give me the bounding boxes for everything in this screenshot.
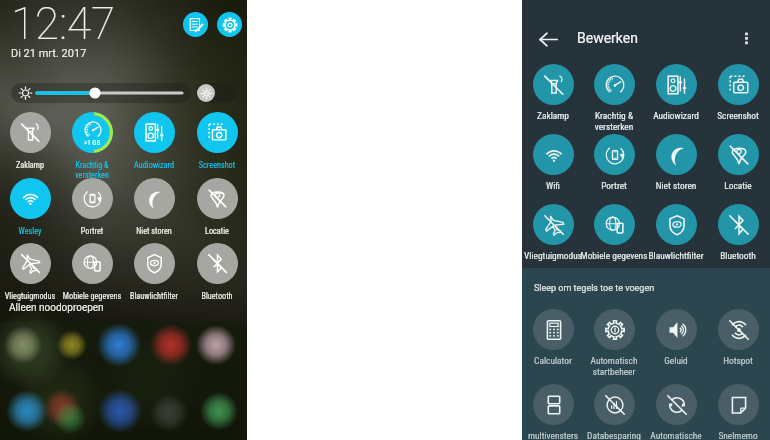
staticText: Bluetooth xyxy=(693,250,770,261)
staticText: Vliegtuigmodus xyxy=(0,291,75,301)
button[interactable]: Calculator xyxy=(508,309,598,366)
button[interactable]: Audiowizard xyxy=(109,112,199,170)
button[interactable]: Notities xyxy=(183,12,208,37)
button[interactable]: Krachtig & versterken xyxy=(569,64,659,132)
button[interactable]: Geluid xyxy=(631,309,721,366)
staticText: Mobiele gegevens xyxy=(569,250,659,261)
button[interactable]: multivensters xyxy=(508,384,598,440)
button[interactable]: Audiowizard xyxy=(631,64,721,121)
staticText: Geluid xyxy=(631,355,721,366)
staticText: Calculator xyxy=(508,355,598,366)
button[interactable]: Niet storen xyxy=(109,178,199,236)
staticText: Locatie xyxy=(172,226,262,236)
staticText: Krachtig & versterken xyxy=(569,110,659,132)
button[interactable]: Locatie xyxy=(172,178,262,236)
staticText: 12:47 xyxy=(11,0,116,50)
button[interactable]: Automatische synchronisatie xyxy=(631,384,721,440)
button[interactable]: Zaklamp xyxy=(508,64,598,121)
button[interactable]: Niet storen xyxy=(631,134,721,191)
staticText: Niet storen xyxy=(109,226,199,236)
button[interactable]: Bluetooth xyxy=(693,204,770,261)
staticText: Wifi xyxy=(508,180,598,191)
button[interactable]: Hotspot xyxy=(693,309,770,366)
button[interactable]: Screenshot xyxy=(172,112,262,170)
staticText: Hotspot xyxy=(693,355,770,366)
button[interactable]: Automatische helderheid xyxy=(196,83,236,103)
staticText: multivensters xyxy=(508,430,598,440)
button[interactable]: Mobiele gegevens xyxy=(569,204,659,261)
button[interactable]: Portret xyxy=(47,178,137,236)
staticText: Portret xyxy=(47,226,137,236)
staticText: Databesparing xyxy=(569,430,659,440)
staticText: Blauwlichtfilter xyxy=(631,250,721,261)
staticText: Zaklamp xyxy=(0,160,75,170)
staticText: Niet storen xyxy=(631,180,721,191)
staticText: Alleen noodoproepen xyxy=(9,302,104,314)
button[interactable]: >1 GB xyxy=(47,112,137,180)
staticText: Screenshot xyxy=(693,110,770,121)
staticText: Vliegtuigmodus xyxy=(508,250,598,261)
staticText: Mobiele gegevens xyxy=(47,291,137,301)
staticText: Sleep om tegels toe te voegen xyxy=(534,283,655,294)
staticText: Zaklamp xyxy=(508,110,598,121)
staticText: >1 GB xyxy=(84,139,101,147)
staticText: Automatisch startbeheer xyxy=(569,355,659,377)
button[interactable]: Blauwlichtfilter xyxy=(109,243,199,301)
button[interactable]: Helderheid xyxy=(11,83,191,103)
button[interactable]: Zaklamp xyxy=(0,112,75,170)
button[interactable]: Vliegtuigmodus xyxy=(0,243,75,301)
button[interactable]: Bluetooth xyxy=(172,243,262,301)
button[interactable]: Wifi xyxy=(508,134,598,191)
button[interactable]: Meer opties xyxy=(735,26,757,48)
staticText: Di 21 mrt. 2017 xyxy=(11,47,87,60)
staticText: Snelmemo xyxy=(693,430,770,440)
button[interactable]: Automatisch startbeheer xyxy=(569,309,659,377)
staticText: Blauwlichtfilter xyxy=(109,291,199,301)
staticText: Audiowizard xyxy=(631,110,721,121)
button[interactable]: Instellingen xyxy=(217,12,242,37)
button[interactable]: Blauwlichtfilter xyxy=(631,204,721,261)
button[interactable]: Locatie xyxy=(693,134,770,191)
button[interactable]: Wesley xyxy=(0,178,75,236)
button[interactable]: Snelmemo xyxy=(693,384,770,440)
staticText: Wesley xyxy=(0,226,75,236)
staticText: Bewerken xyxy=(577,30,638,46)
staticText: Portret xyxy=(569,180,659,191)
staticText: Locatie xyxy=(693,180,770,191)
staticText: Screenshot xyxy=(172,160,262,170)
staticText: Krachtig & versterken xyxy=(47,160,137,180)
button[interactable]: Vliegtuigmodus xyxy=(508,204,598,261)
button[interactable]: Mobiele gegevens xyxy=(47,243,137,301)
button[interactable]: Portret xyxy=(569,134,659,191)
button[interactable]: Databesparing xyxy=(569,384,659,440)
staticText: Bluetooth xyxy=(172,291,262,301)
button[interactable]: Screenshot xyxy=(693,64,770,121)
staticText: Audiowizard xyxy=(109,160,199,170)
staticText: Automatische synchronisatie xyxy=(631,430,721,440)
button[interactable]: Terug xyxy=(536,27,560,51)
